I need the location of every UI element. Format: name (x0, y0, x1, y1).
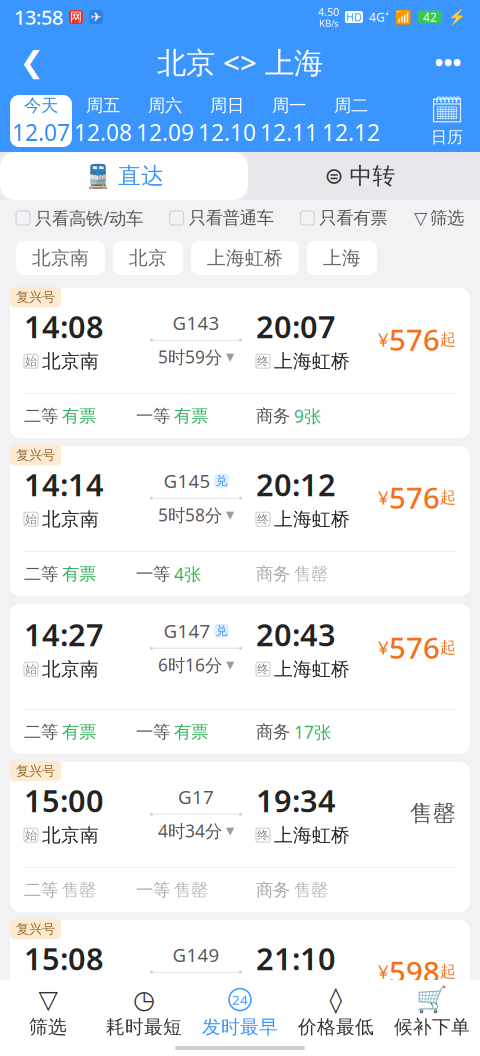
staticText: 始 (25, 354, 37, 368)
staticText: ¥ (378, 485, 389, 510)
staticText: 发时最早 (202, 1015, 278, 1038)
staticText: 20:43 (256, 614, 336, 655)
button[interactable]: 复兴号 (10, 446, 470, 596)
button[interactable]: 复兴号 (10, 288, 470, 438)
staticText: 北京南 (32, 246, 89, 269)
button[interactable]: 上海 (307, 241, 377, 275)
button[interactable]: 日历 (420, 95, 474, 147)
staticText: 二等 (24, 405, 58, 427)
staticText: 上海 (323, 246, 361, 269)
button[interactable]: 24 (192, 987, 288, 1038)
staticText: 价格最低 (298, 1015, 374, 1038)
button[interactable]: 周六 (134, 95, 196, 147)
button[interactable]: 🛒 (384, 987, 480, 1038)
staticText: 4时34分 (158, 819, 222, 842)
button[interactable]: 只看高铁/动车 (16, 206, 143, 229)
staticText: 有票 (62, 405, 96, 427)
staticText: 4张 (174, 562, 201, 585)
staticText: 复兴号 (16, 447, 55, 463)
staticText: 上海虹桥 (207, 246, 283, 269)
staticText: 售罄 (294, 879, 328, 901)
button[interactable]: 只看有票 (300, 207, 387, 229)
staticText: ▽ (414, 208, 427, 228)
staticText: 终 (257, 512, 269, 526)
button[interactable]: 周五 (72, 95, 134, 147)
staticText: 有票 (62, 721, 96, 743)
staticText: 21:10 (256, 938, 336, 979)
staticText: 一等 (136, 879, 170, 901)
button[interactable]: ▽ (414, 207, 464, 229)
button[interactable]: ⊜ (240, 152, 480, 200)
staticText: 筛选 (430, 207, 464, 229)
staticText: 北京南 (42, 508, 99, 531)
staticText: 复兴号 (16, 289, 55, 305)
button[interactable]: ◊ (288, 987, 384, 1038)
staticText: 今天 (24, 95, 58, 116)
staticText: 576 (389, 628, 440, 667)
button[interactable]: 🚆 (0, 152, 248, 200)
staticText: 576 (389, 478, 440, 517)
staticText: 周日 (210, 95, 244, 116)
staticText: 上海虹桥 (274, 824, 350, 847)
button[interactable]: 上海虹桥 (191, 241, 299, 275)
button[interactable]: 北京 (113, 241, 183, 275)
button[interactable]: 只看普通车 (170, 207, 274, 229)
staticText: 只看高铁/动车 (35, 206, 143, 229)
staticText: ¥ (378, 635, 389, 660)
staticText: 直达 (118, 162, 164, 190)
staticText: 12.07 (12, 117, 70, 147)
staticText: ▼ (226, 659, 234, 671)
staticText: 13:58 (14, 4, 63, 30)
button[interactable]: 今天 (10, 95, 72, 147)
staticText: 日历 (431, 127, 463, 147)
staticText: 上海虹桥 (274, 982, 350, 1005)
button[interactable]: 复兴号 (10, 920, 470, 1056)
staticText: 北京南 (42, 350, 99, 373)
staticText: 12.12 (322, 117, 380, 147)
staticText: 售罄 (294, 563, 328, 585)
staticText: 始 (25, 512, 37, 526)
staticText: 起 (440, 961, 456, 981)
staticText: 周五 (86, 95, 120, 116)
button[interactable]: 周一 (258, 95, 320, 147)
staticText: 商务 (256, 563, 290, 585)
staticText: ⊜ (324, 163, 343, 189)
staticText: 北京南 (42, 658, 99, 681)
staticText: 5时59分 (158, 345, 222, 368)
staticText: 4G⁺ (369, 9, 389, 25)
staticText: 上海虹桥 (274, 658, 350, 681)
staticText: 有票 (62, 563, 96, 585)
button[interactable]: 返回 (8, 38, 56, 86)
button[interactable]: ▽ (0, 987, 96, 1038)
staticText: 始 (25, 662, 37, 676)
staticText: 📶 (395, 9, 412, 25)
staticText: 576 (389, 320, 440, 359)
staticText: 有票 (174, 405, 208, 427)
staticText: 周六 (148, 95, 182, 116)
staticText: 二等 (24, 563, 58, 585)
staticText: 上海虹桥 (274, 508, 350, 531)
button[interactable]: 周日 (196, 95, 258, 147)
staticText: 19:34 (256, 780, 336, 821)
staticText: ▼ (226, 509, 234, 521)
staticText: 终 (257, 662, 269, 676)
staticText: ••• (434, 46, 461, 78)
button[interactable]: 周二 (320, 95, 382, 147)
staticText: 北京 (129, 246, 167, 269)
staticText: 网 (70, 10, 82, 24)
button[interactable]: ◷ (96, 987, 192, 1038)
staticText: ◷ (133, 985, 155, 1014)
button[interactable]: 复兴号 (10, 762, 470, 912)
button[interactable]: 更多 (424, 38, 472, 86)
button[interactable]: 14:27 (10, 604, 470, 754)
staticText: 始 (25, 828, 37, 842)
staticText: 商务 (256, 879, 290, 901)
staticText: 终 (257, 828, 269, 842)
staticText: 一等 (136, 405, 170, 427)
staticText: 起 (440, 487, 456, 507)
staticText: 598 (389, 952, 440, 991)
staticText: 商务 (256, 405, 290, 427)
button[interactable]: 北京南 (16, 241, 105, 275)
